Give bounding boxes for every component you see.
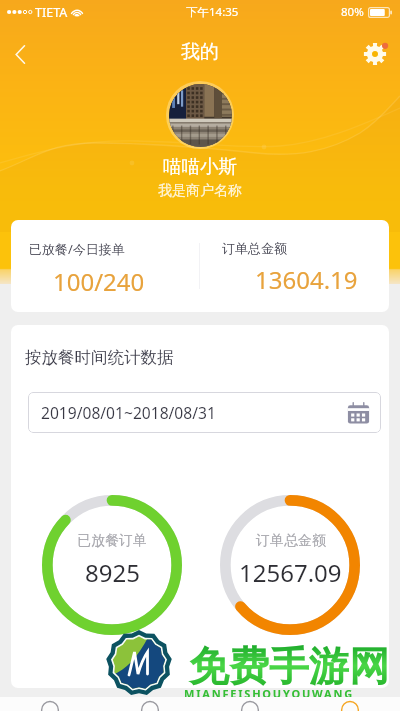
button[interactable]: Profile photo	[166, 81, 234, 149]
staticText: 按放餐时间统计数据	[25, 347, 174, 368]
staticText: 13604.19	[255, 263, 358, 296]
button[interactable]: 2019/08/01~2018/08/31	[28, 392, 381, 433]
staticText: TIETA	[35, 4, 68, 21]
staticText: 免费手游网	[189, 641, 389, 691]
staticText: MIANFEISHOUYOUWANG	[184, 686, 354, 701]
button[interactable]: 已放餐/今日接单	[11, 220, 199, 312]
staticText: 我是商户名称	[158, 182, 242, 200]
button[interactable]: Menu	[100, 697, 200, 711]
staticText: 8925	[85, 556, 140, 589]
button[interactable]: 订单总金额	[200, 220, 389, 312]
button[interactable]: Stats	[200, 697, 300, 711]
staticText: 我的	[181, 40, 219, 64]
staticText: 下午14:35	[186, 4, 239, 20]
button[interactable]: Mine	[300, 697, 400, 711]
staticText: 80%	[341, 4, 364, 20]
staticText: 100/240	[53, 265, 145, 298]
button[interactable]: Back	[0, 34, 40, 74]
staticText: 喵喵小斯	[163, 155, 237, 178]
staticText: 已放餐/今日接单	[29, 240, 125, 258]
button[interactable]: Settings	[355, 34, 395, 74]
staticText: 2019/08/01~2018/08/31	[41, 402, 216, 423]
staticText: 订单总金额	[256, 532, 326, 550]
staticText: 已放餐订单	[77, 532, 147, 550]
button[interactable]: Orders	[0, 697, 100, 711]
staticText: 订单总金额	[222, 240, 287, 256]
staticText: 12567.09	[239, 556, 342, 589]
